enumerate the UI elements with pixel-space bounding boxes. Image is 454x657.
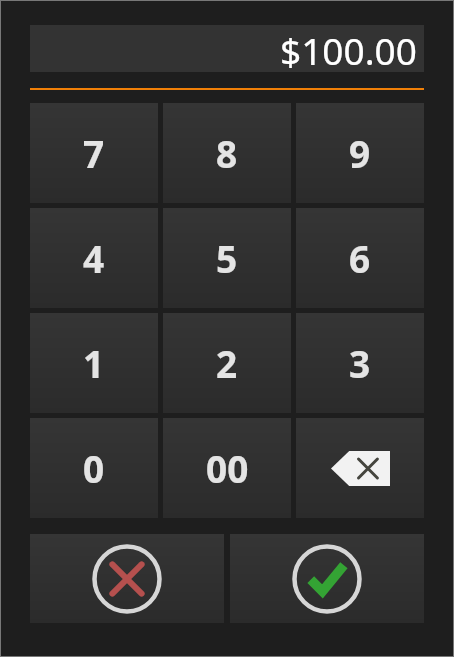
staticText: 9	[349, 128, 371, 178]
button[interactable]: 4	[30, 208, 158, 308]
staticText: 8	[216, 128, 238, 178]
button[interactable]: Backspace	[296, 418, 424, 518]
staticText: 3	[349, 338, 371, 388]
button[interactable]: Cancel	[30, 534, 224, 623]
button[interactable]: 8	[163, 103, 291, 203]
staticText: 4	[83, 233, 105, 283]
button[interactable]: 0	[30, 418, 158, 518]
button[interactable]: 5	[163, 208, 291, 308]
button[interactable]: 3	[296, 313, 424, 413]
button[interactable]: 6	[296, 208, 424, 308]
staticText: $100.00	[280, 25, 417, 72]
staticText: 00	[206, 443, 249, 493]
button[interactable]: 9	[296, 103, 424, 203]
button[interactable]: Confirm	[230, 534, 424, 623]
button[interactable]: 1	[30, 313, 158, 413]
staticText: 6	[349, 233, 371, 283]
staticText: 5	[216, 233, 238, 283]
button[interactable]: 7	[30, 103, 158, 203]
button[interactable]: 2	[163, 313, 291, 413]
staticText: 7	[83, 128, 105, 178]
button[interactable]: 00	[163, 418, 291, 518]
staticText: 0	[83, 443, 105, 493]
staticText: 1	[83, 338, 105, 388]
staticText: 2	[216, 338, 238, 388]
